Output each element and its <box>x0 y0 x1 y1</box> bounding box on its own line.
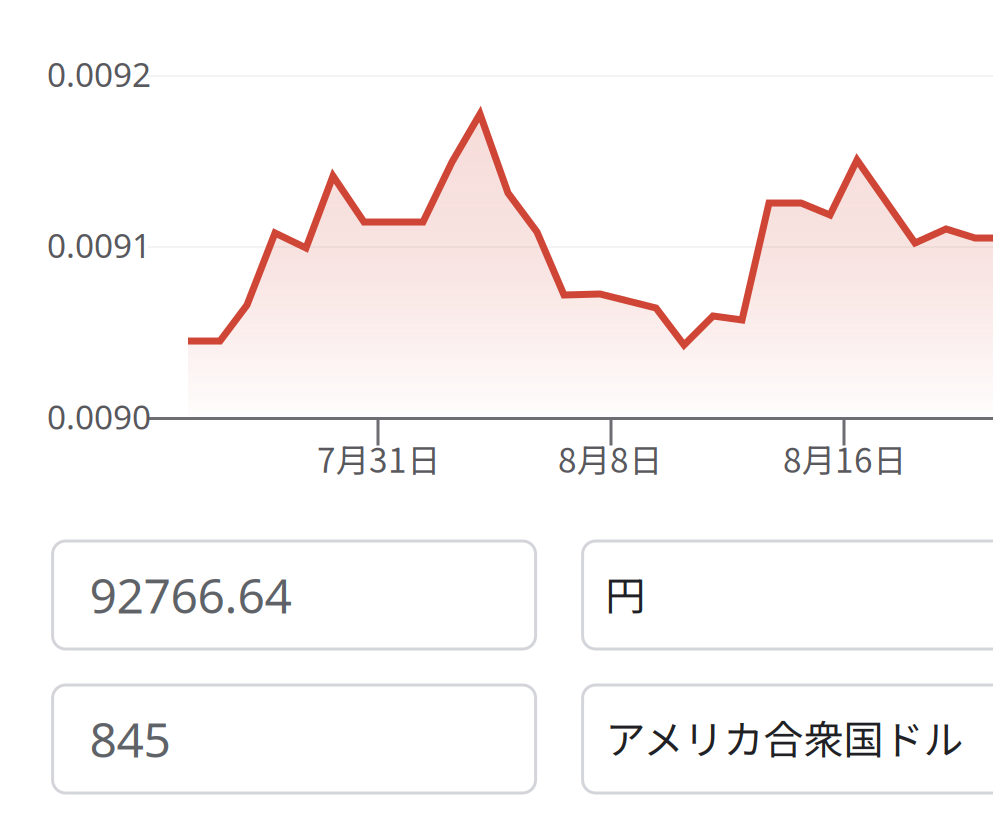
staticText: 92766.64 <box>90 563 292 627</box>
staticText: 0.0090 <box>47 394 151 439</box>
staticText: 円 <box>606 564 646 622</box>
button[interactable]: 円 <box>583 541 993 649</box>
staticText: 8月16日 <box>783 434 906 482</box>
button[interactable]: アメリカ合衆国ドル <box>583 685 993 793</box>
staticText: 0.0092 <box>47 52 151 96</box>
button[interactable]: 92766.64 <box>53 541 536 649</box>
staticText: 845 <box>90 707 171 771</box>
staticText: 8月8日 <box>558 434 662 482</box>
button[interactable]: 845 <box>53 685 536 793</box>
staticText: 0.0091 <box>47 223 151 267</box>
staticText: 7月31日 <box>317 434 440 482</box>
staticText: アメリカ合衆国ドル <box>606 708 964 766</box>
